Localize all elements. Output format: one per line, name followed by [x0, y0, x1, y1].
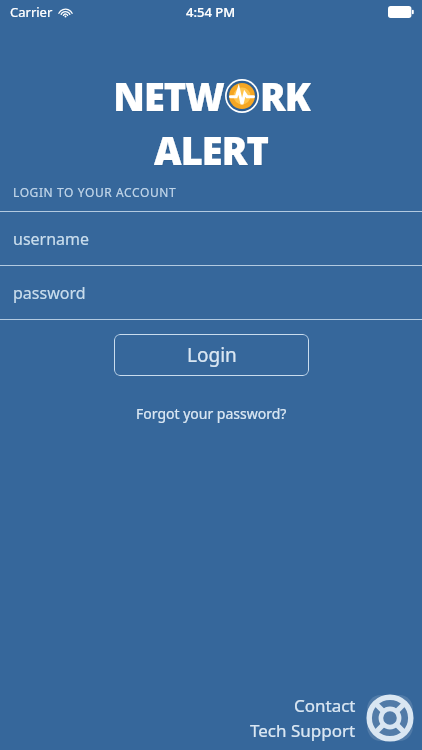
- staticText: LOGIN TO YOUR ACCOUNT: [13, 184, 177, 200]
- staticText: Carrier: [10, 3, 53, 21]
- staticText: Login: [187, 342, 237, 368]
- button[interactable]: Login: [114, 334, 309, 376]
- staticText: NETW: [113, 70, 224, 122]
- button[interactable]: Contact: [250, 692, 416, 744]
- staticText: Contact: [294, 694, 356, 717]
- staticText: password: [13, 282, 86, 304]
- staticText: Forgot your password?: [136, 404, 287, 423]
- staticText: RK: [260, 70, 310, 122]
- staticText: NETW: [114, 71, 225, 123]
- staticText: Tech Support: [250, 719, 356, 742]
- staticText: RK: [261, 71, 311, 123]
- staticText: ALERT: [154, 124, 268, 176]
- staticText: 4:54 PM: [186, 3, 236, 21]
- staticText: username: [13, 228, 90, 250]
- button[interactable]: username: [0, 212, 422, 265]
- other: Contact Tech Support: [364, 692, 416, 744]
- staticText: ALERT: [155, 125, 269, 177]
- button[interactable]: password: [0, 266, 422, 319]
- button[interactable]: Forgot your password?: [126, 400, 297, 427]
